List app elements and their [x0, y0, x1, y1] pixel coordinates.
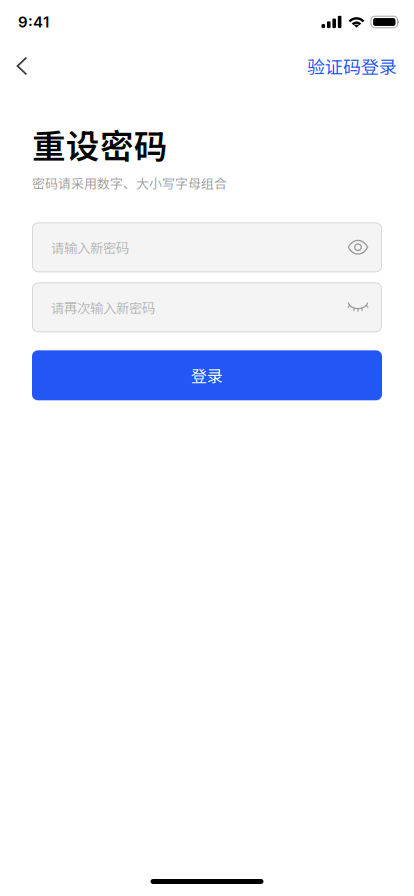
staticText: 9:41: [18, 13, 49, 31]
button[interactable]: 登录: [32, 350, 382, 400]
staticText: 密码请采用数字、大小写字母组合: [32, 173, 227, 192]
button[interactable]: Toggle password visibility: [342, 230, 374, 264]
button[interactable]: 验证码登录: [307, 44, 397, 88]
staticText: 登录: [191, 364, 223, 387]
staticText: 请再次输入新密码: [51, 298, 155, 317]
staticText: 重设密码: [32, 120, 168, 168]
button[interactable]: Toggle password visibility: [342, 290, 374, 324]
staticText: 验证码登录: [307, 53, 397, 79]
button[interactable]: Back: [2, 44, 42, 88]
staticText: 请输入新密码: [51, 238, 129, 257]
